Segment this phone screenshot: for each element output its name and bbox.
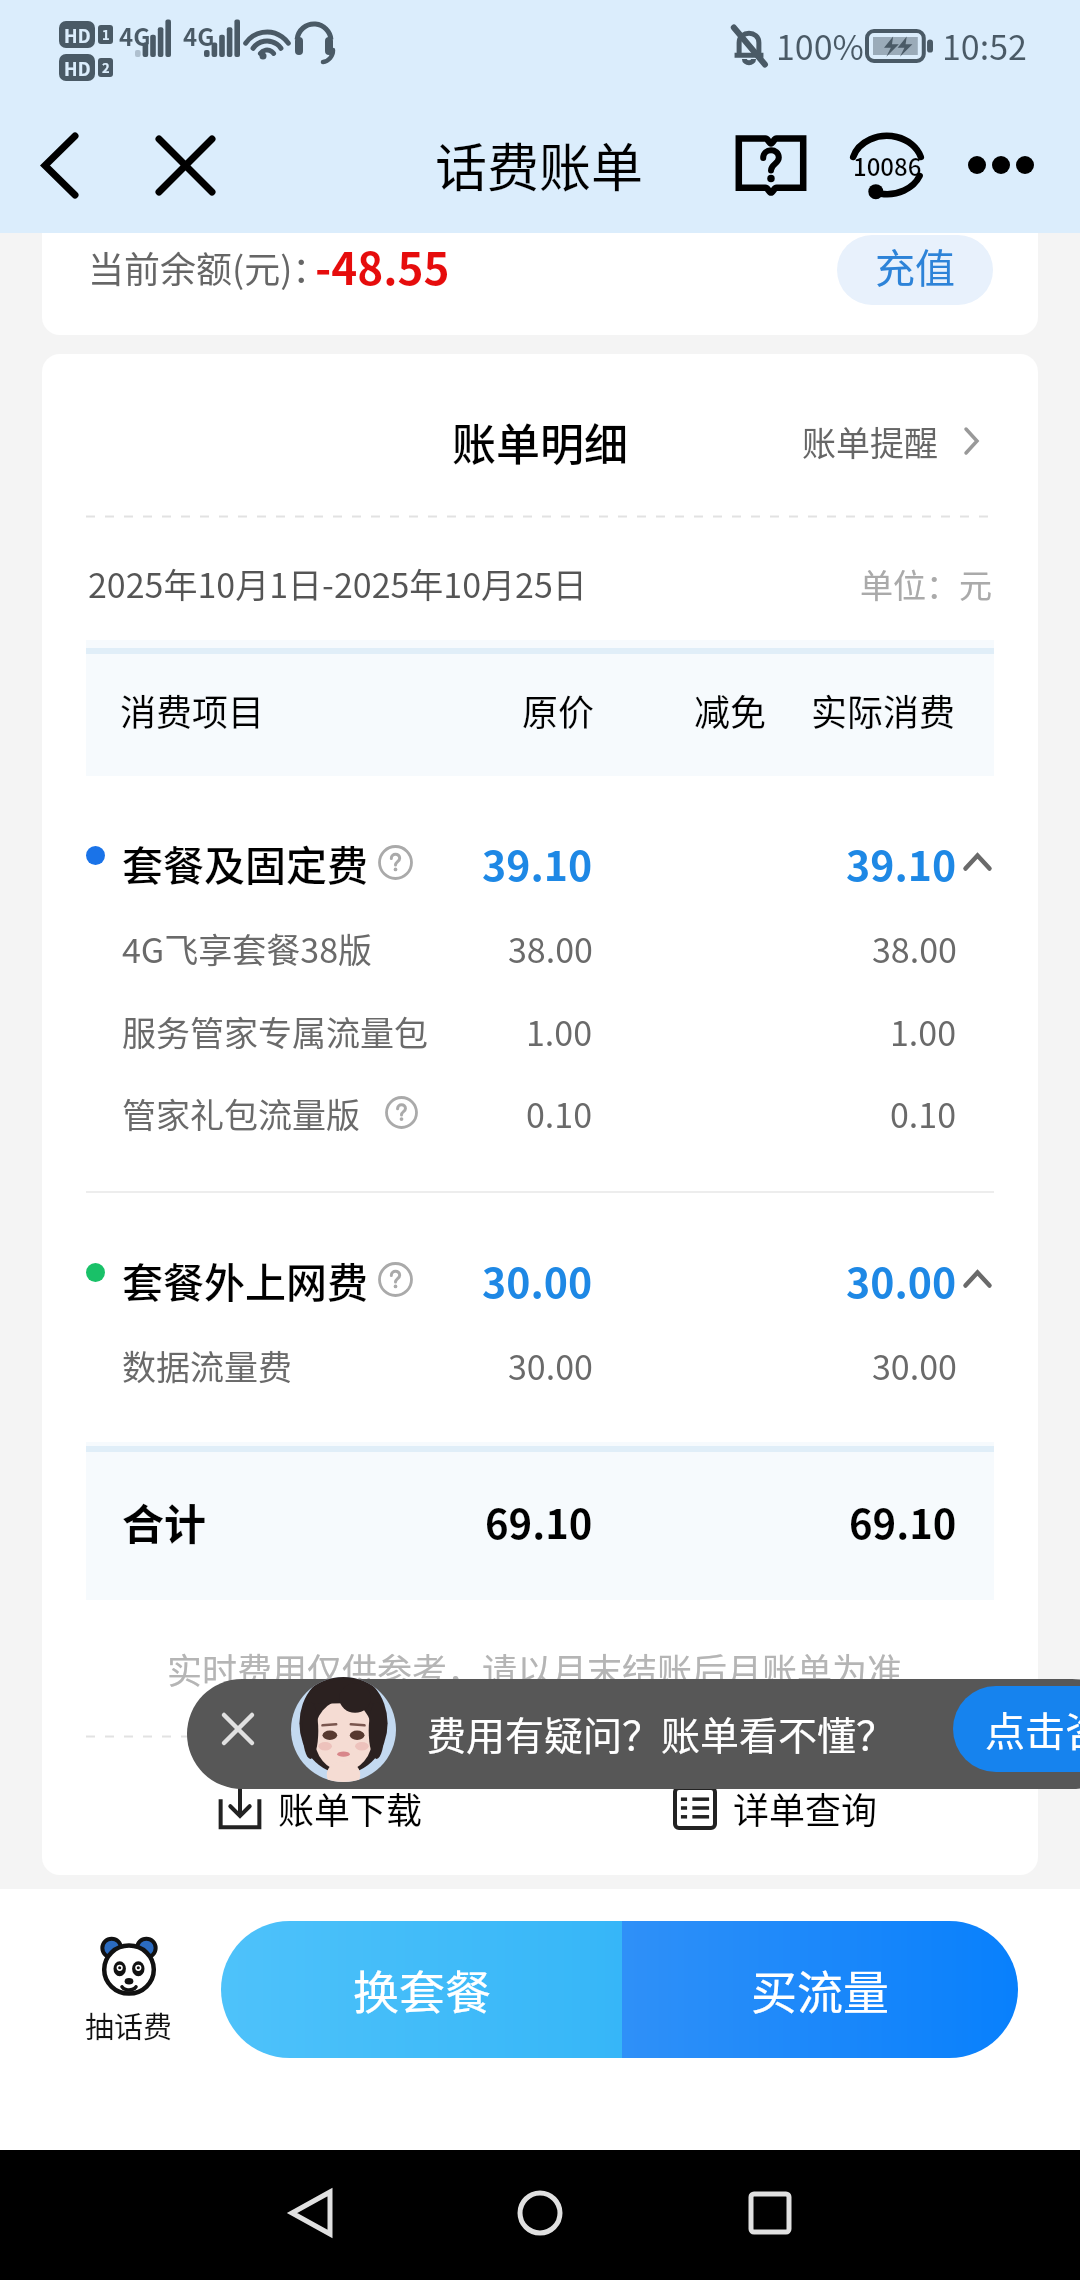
staticText: 数据流量费 [122, 1341, 292, 1390]
staticText: 30.00 [508, 1341, 593, 1390]
staticText: 合计 [122, 1491, 207, 1552]
staticText: 2 [102, 58, 110, 77]
staticText: 实时费用仅供参考，请以月末结账后月账单为准 [167, 1643, 903, 1694]
button[interactable]: 买流量 [622, 1921, 1018, 2058]
staticText: 4G [183, 18, 215, 53]
staticText: 38.00 [508, 924, 593, 973]
button[interactable]: 充值 [837, 235, 993, 305]
button[interactable]: Help [726, 120, 816, 210]
button[interactable]: Back [4, 110, 114, 220]
button[interactable]: 详单查询 [673, 1768, 913, 1848]
staticText: 69.10 [849, 1493, 957, 1551]
staticText: 账单下载 [278, 1782, 423, 1834]
staticText: 39.10 [846, 833, 957, 892]
staticText: HD [64, 22, 91, 48]
staticText: 抽话费 [85, 2004, 173, 2046]
staticText: 账单提醒 [802, 417, 938, 466]
button[interactable] [86, 1231, 994, 1327]
staticText: 充值 [875, 237, 955, 295]
staticText: 详单查询 [733, 1782, 878, 1834]
button[interactable]: 换套餐 [221, 1921, 622, 2058]
staticText: 话费账单 [435, 127, 644, 202]
staticText: 套餐及固定费 [122, 833, 368, 892]
staticText: 原价 [522, 684, 595, 736]
staticText: 套餐外上网费 [122, 1250, 368, 1309]
staticText: 2025年10月1日-2025年10月25日 [88, 559, 587, 608]
staticText: 10086 [853, 148, 922, 183]
staticText: 当前余额(元)： [88, 241, 329, 293]
button[interactable]: Close tip [208, 1699, 268, 1759]
staticText: 消费项目 [120, 684, 265, 736]
staticText: 1.00 [890, 1007, 957, 1056]
staticText: 单位：元 [860, 560, 992, 608]
staticText: 30.00 [482, 1250, 593, 1309]
staticText: 30.00 [872, 1341, 957, 1390]
staticText: 减免 [694, 684, 767, 736]
staticText: 69.10 [485, 1493, 593, 1551]
staticText: 1 [102, 25, 110, 44]
staticText: 服务管家专属流量包 [122, 1007, 428, 1056]
staticText: 费用有疑问？账单看不懂？ [427, 1705, 896, 1761]
staticText: 买流量 [751, 1956, 889, 2023]
button[interactable]: 账单提醒 [802, 411, 1002, 471]
button[interactable]: 账单下载 [218, 1768, 458, 1848]
staticText: HD [64, 55, 91, 81]
button[interactable]: Recent apps [725, 2168, 815, 2258]
staticText: -48.55 [315, 234, 450, 298]
staticText: 管家礼包流量版 [122, 1089, 360, 1138]
button[interactable]: More options [956, 120, 1046, 210]
staticText: 10:52 [942, 21, 1027, 70]
button[interactable]: Close [130, 110, 240, 220]
button[interactable]: 抽话费 [78, 1936, 180, 2046]
staticText: 账单明细 [452, 410, 628, 474]
button[interactable]: Home [495, 2168, 585, 2258]
staticText: 4G飞享套餐38版 [122, 924, 373, 973]
staticText: 点击咨询 [985, 1700, 1080, 1758]
staticText: 实际消费 [811, 684, 956, 736]
staticText: 换套餐 [353, 1956, 491, 2023]
button[interactable] [86, 814, 994, 910]
button[interactable]: Back [266, 2168, 356, 2258]
button[interactable]: Call 10086 customer service [842, 120, 932, 210]
staticText: 0.10 [890, 1089, 957, 1138]
staticText: 4G [119, 18, 151, 53]
staticText: 0.10 [526, 1089, 593, 1138]
staticText: 100% [776, 21, 864, 70]
staticText: 38.00 [872, 924, 957, 973]
button[interactable]: 点击咨询 [953, 1686, 1080, 1772]
staticText: 39.10 [482, 833, 593, 892]
staticText: 1.00 [526, 1007, 593, 1056]
staticText: 30.00 [846, 1250, 957, 1309]
